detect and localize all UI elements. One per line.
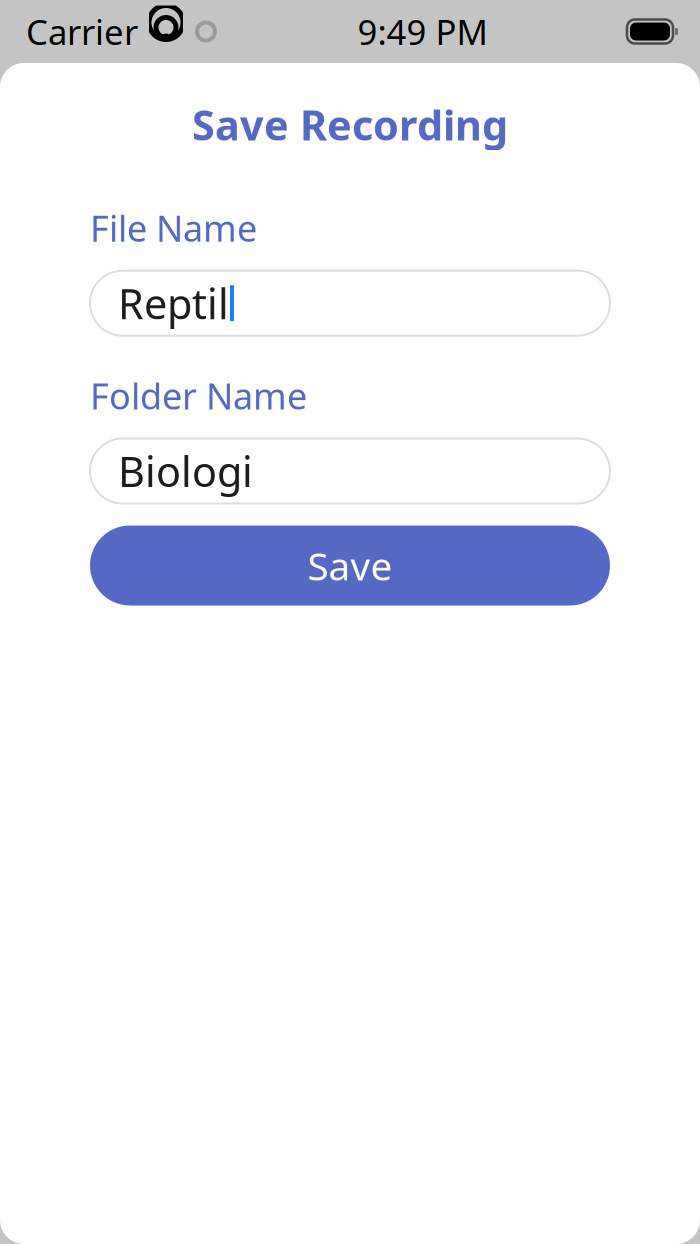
button[interactable]: Biologi [90, 438, 610, 503]
button[interactable]: Reptil [90, 271, 610, 336]
staticText: Save [307, 540, 392, 591]
staticText: Biologi [118, 444, 253, 498]
staticText: Save Recording [192, 97, 508, 152]
staticText: File Name [90, 204, 257, 252]
button[interactable]: Save [90, 525, 610, 605]
staticText: Carrier [26, 8, 138, 54]
staticText: Folder Name [90, 372, 307, 419]
staticText: 9:49 PM [357, 8, 487, 54]
staticText: Reptil [118, 276, 229, 331]
